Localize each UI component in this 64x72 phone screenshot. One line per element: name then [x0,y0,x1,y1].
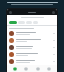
button[interactable]: Groups [34,65,42,72]
button[interactable] [7,44,57,51]
button[interactable]: Chats [22,65,30,72]
button[interactable] [7,37,57,44]
button[interactable] [26,21,32,24]
button[interactable]: Home [11,65,19,72]
button[interactable]: Search [52,11,55,14]
button[interactable] [7,15,57,20]
button[interactable] [7,51,57,58]
button[interactable] [33,21,38,24]
button[interactable] [7,30,57,37]
button[interactable] [7,58,57,65]
button[interactable] [18,21,25,24]
button[interactable] [9,21,17,24]
button[interactable]: Menu [9,11,12,14]
button[interactable]: Profile [45,65,53,72]
